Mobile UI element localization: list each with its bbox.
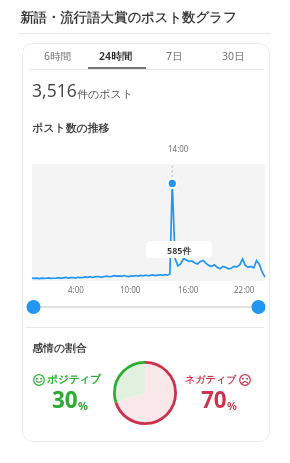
button[interactable]: 24時間 [87, 44, 145, 68]
staticText: 3,516 [32, 78, 77, 102]
staticText: 4:00 [68, 284, 84, 295]
button[interactable]: ネガティブ [185, 373, 251, 386]
other: Positive [33, 374, 45, 386]
staticText: 7日 [166, 49, 183, 63]
button[interactable]: Positive [33, 373, 101, 386]
staticText: 新語・流行語大賞のポスト数グラフ [20, 9, 237, 26]
button[interactable]: 7日 [145, 44, 204, 68]
staticText: 14:00 [168, 143, 189, 154]
staticText: 6時間 [44, 49, 72, 63]
staticText: 30日 [222, 49, 245, 63]
staticText: 10:00 [120, 284, 141, 295]
staticText: ポジティブ [47, 373, 101, 386]
staticText: 22:00 [234, 284, 255, 295]
staticText: 感情の割合 [32, 342, 87, 356]
button[interactable] [22, 298, 270, 316]
staticText: 24時間 [99, 49, 133, 63]
staticText: 件のポスト [77, 87, 134, 101]
staticText: 30 [52, 384, 78, 415]
staticText: 70 [201, 384, 227, 415]
button[interactable]: 30日 [204, 44, 263, 68]
button[interactable]: 6時間 [29, 44, 87, 68]
other: Negative [239, 374, 251, 386]
staticText: 16:00 [178, 284, 199, 295]
staticText: % [227, 398, 237, 413]
staticText: ポスト数の推移 [32, 122, 110, 136]
staticText: ネガティブ [185, 373, 237, 386]
staticText: % [78, 398, 88, 413]
staticText: 585件 [167, 244, 192, 256]
